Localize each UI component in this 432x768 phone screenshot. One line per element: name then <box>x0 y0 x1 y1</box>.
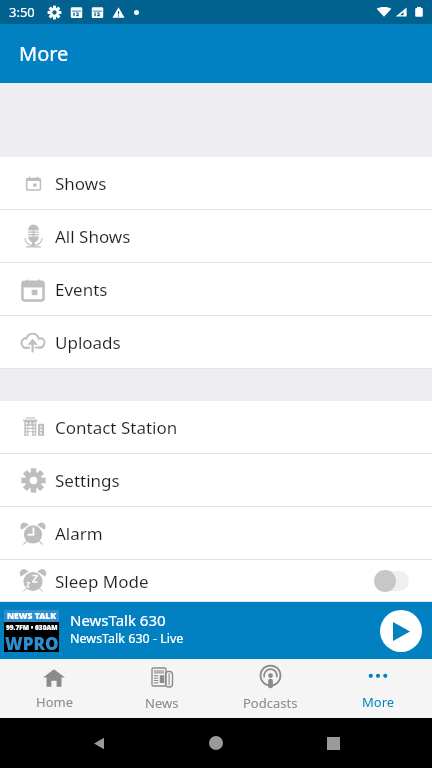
staticText: Alarm <box>55 522 103 545</box>
staticText: Shows <box>55 172 107 195</box>
button[interactable]: Sleep mode toggle <box>374 570 409 592</box>
button[interactable]: News <box>108 659 216 718</box>
button[interactable]: More <box>324 659 432 718</box>
staticText: All Shows <box>55 225 131 248</box>
staticText: More <box>19 40 69 67</box>
button[interactable]: Podcasts <box>216 659 324 718</box>
button[interactable]: Uploads <box>0 316 432 369</box>
button[interactable]: Sleep Mode <box>0 560 432 602</box>
button[interactable]: Events <box>0 263 432 316</box>
staticText: 99.7FM • 630AM <box>6 623 58 632</box>
staticText: Settings <box>55 469 120 492</box>
staticText: 3:50 <box>9 3 35 21</box>
button[interactable]: Play <box>380 610 422 652</box>
button[interactable]: Shows <box>0 157 432 210</box>
staticText: NewsTalk 630 <box>70 610 166 630</box>
button[interactable]: Settings <box>0 454 432 507</box>
staticText: Podcasts <box>243 694 298 712</box>
staticText: NEWS TALK <box>7 610 57 622</box>
staticText: Sleep Mode <box>55 570 149 593</box>
button[interactable]: Home <box>0 659 108 718</box>
button[interactable]: Alarm <box>0 507 432 560</box>
staticText: WPRO <box>5 632 59 652</box>
staticText: News <box>145 694 179 712</box>
button[interactable]: Recents <box>315 725 351 761</box>
button[interactable]: Contact Station <box>0 401 432 454</box>
button[interactable]: All Shows <box>0 210 432 263</box>
staticText: Events <box>55 278 108 301</box>
staticText: Home <box>36 693 73 711</box>
staticText: NewsTalk 630 - Live <box>70 630 184 647</box>
button[interactable]: NEWS TALK <box>0 602 432 659</box>
staticText: More <box>362 693 395 711</box>
staticText: Uploads <box>55 331 121 354</box>
button[interactable]: Home <box>198 725 234 761</box>
staticText: Contact Station <box>55 416 178 439</box>
button[interactable]: Back <box>81 725 117 761</box>
